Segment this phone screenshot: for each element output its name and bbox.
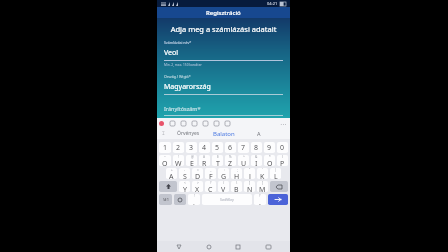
button[interactable]: [ bbox=[244, 181, 255, 192]
button[interactable]: " bbox=[244, 168, 255, 179]
staticText: ^ bbox=[243, 155, 245, 159]
button[interactable]: > bbox=[192, 181, 203, 192]
staticText: 3 bbox=[189, 143, 194, 153]
staticText: Irányítószám* bbox=[164, 105, 201, 112]
button[interactable]: # bbox=[199, 155, 210, 166]
staticText: # bbox=[203, 155, 206, 159]
staticText: D bbox=[195, 172, 201, 179]
button[interactable]: Note bbox=[189, 118, 200, 128]
button[interactable]: | bbox=[270, 168, 281, 179]
staticText: O bbox=[267, 159, 273, 166]
button[interactable]: Keyboard bbox=[260, 241, 276, 252]
staticText: 04:21 bbox=[267, 1, 278, 6]
button[interactable]: 9 bbox=[264, 142, 275, 153]
button[interactable]: ] bbox=[257, 181, 268, 192]
button[interactable]: Recents bbox=[230, 241, 246, 252]
button[interactable]: Settings bbox=[222, 118, 233, 128]
staticText: Min. 2, max. 150 karakter bbox=[164, 63, 202, 67]
button[interactable]: 7 bbox=[238, 142, 249, 153]
button[interactable]: Tools bbox=[157, 128, 171, 139]
button[interactable]: _ bbox=[205, 168, 216, 179]
button[interactable]: 2 bbox=[173, 142, 184, 153]
button[interactable]: Balaton bbox=[206, 128, 241, 139]
button[interactable]: Home bbox=[201, 241, 217, 252]
staticText: \ bbox=[236, 181, 238, 185]
button[interactable]: + bbox=[166, 168, 177, 179]
staticText: ; bbox=[237, 168, 238, 172]
staticText: ? bbox=[210, 181, 212, 185]
button[interactable]: < bbox=[179, 181, 190, 192]
staticText: Regisztráció bbox=[206, 9, 241, 17]
staticText: A bbox=[257, 130, 261, 137]
button[interactable]: Search bbox=[167, 118, 178, 128]
staticText: . bbox=[259, 198, 261, 205]
staticText: !#1 bbox=[163, 197, 169, 202]
button[interactable]: ! bbox=[188, 194, 200, 205]
button[interactable]: Enter bbox=[268, 194, 288, 205]
button[interactable]: $ bbox=[212, 155, 223, 166]
staticText: Q bbox=[162, 159, 168, 166]
button[interactable]: ? bbox=[205, 181, 216, 192]
button[interactable]: Backspace bbox=[270, 181, 288, 192]
button[interactable]: ? bbox=[254, 194, 266, 205]
staticText: @ bbox=[191, 155, 194, 159]
button[interactable]: \ bbox=[231, 181, 242, 192]
button[interactable]: 8 bbox=[251, 142, 262, 153]
staticText: _ bbox=[210, 168, 212, 172]
staticText: T bbox=[216, 159, 220, 166]
staticText: J bbox=[249, 172, 251, 179]
button[interactable]: / bbox=[218, 181, 229, 192]
button[interactable]: 0 bbox=[277, 142, 288, 153]
staticText: M bbox=[259, 185, 266, 192]
button[interactable]: ' bbox=[257, 168, 268, 179]
button[interactable]: A bbox=[241, 128, 276, 139]
button[interactable]: ^ bbox=[238, 155, 249, 166]
button[interactable]: = bbox=[192, 168, 203, 179]
staticText: A bbox=[169, 172, 174, 179]
button[interactable]: ~ bbox=[159, 155, 171, 166]
button[interactable]: ( bbox=[277, 155, 288, 166]
button[interactable]: 5 bbox=[212, 142, 223, 153]
button[interactable]: Clipboard bbox=[200, 118, 211, 128]
button[interactable]: Translate bbox=[211, 118, 222, 128]
button[interactable]: !#1 bbox=[159, 194, 172, 205]
button[interactable]: ! bbox=[173, 155, 184, 166]
staticText: Z bbox=[228, 159, 233, 166]
staticText: & bbox=[255, 155, 258, 159]
button[interactable]: Back bbox=[171, 241, 187, 252]
button[interactable]: 4 bbox=[199, 142, 210, 153]
staticText: * bbox=[269, 155, 271, 159]
staticText: , bbox=[193, 198, 195, 205]
staticText: C bbox=[208, 185, 213, 192]
button[interactable]: * bbox=[264, 155, 275, 166]
button[interactable]: Örvényes bbox=[171, 128, 206, 139]
button[interactable]: Voice bbox=[159, 121, 164, 126]
button[interactable]: & bbox=[251, 155, 262, 166]
button[interactable]: @ bbox=[186, 155, 197, 166]
button[interactable]: ; bbox=[231, 168, 242, 179]
button[interactable]: - bbox=[179, 168, 190, 179]
staticText: Örvényes bbox=[177, 130, 200, 137]
staticText: " bbox=[249, 168, 251, 172]
button[interactable]: 1 bbox=[159, 142, 171, 153]
button[interactable]: Shift bbox=[159, 181, 177, 192]
staticText: ⋯ bbox=[280, 120, 286, 127]
staticText: > bbox=[197, 181, 199, 185]
button[interactable]: Space bbox=[202, 194, 252, 205]
staticText: 7 bbox=[241, 143, 246, 153]
staticText: 0 bbox=[280, 143, 285, 153]
button[interactable]: % bbox=[225, 155, 236, 166]
staticText: ⌶ bbox=[162, 131, 166, 136]
button[interactable]: Emoji bbox=[174, 194, 186, 205]
staticText: G bbox=[221, 172, 227, 179]
staticText: Adja meg a számlázási adatait bbox=[157, 24, 290, 34]
button[interactable]: 6 bbox=[225, 142, 236, 153]
staticText: Y bbox=[183, 185, 187, 192]
staticText: 4 bbox=[202, 143, 207, 153]
button[interactable]: More bbox=[280, 120, 286, 127]
button[interactable]: Sticker bbox=[178, 118, 189, 128]
button[interactable]: 3 bbox=[186, 142, 197, 153]
button[interactable]: : bbox=[218, 168, 229, 179]
staticText: Magyarország bbox=[164, 82, 211, 92]
staticText: 2 bbox=[176, 143, 181, 153]
